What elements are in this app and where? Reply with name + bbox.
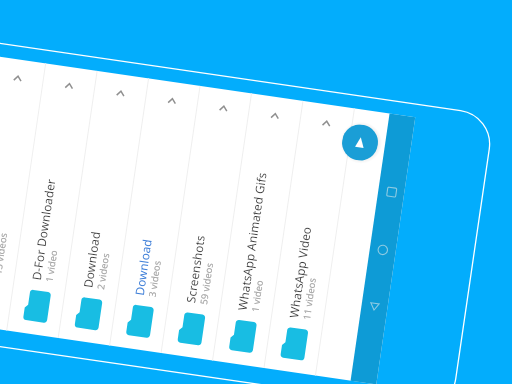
button[interactable]: D-For Downloader	[7, 63, 98, 338]
staticText: D-For Downloader	[28, 177, 59, 281]
staticText: WhatsApp Video	[285, 225, 314, 319]
button[interactable]: WhatsApp Video	[264, 101, 355, 376]
staticText: 2 videos	[94, 252, 112, 290]
staticText: 11 videos	[300, 276, 319, 320]
button[interactable]: Recent apps	[379, 180, 404, 205]
staticText: 3 videos	[146, 260, 164, 298]
staticText: 13 videos	[0, 231, 10, 275]
button[interactable]: Back	[362, 294, 387, 319]
staticText: 1 video	[248, 278, 266, 313]
button[interactable]: Download	[110, 78, 200, 353]
button[interactable]: WhatsApp Animated Gifs	[213, 93, 303, 368]
staticText: 59 videos	[197, 261, 216, 305]
button[interactable]: Screenshots	[162, 86, 252, 361]
staticText: Screenshots	[182, 234, 208, 304]
staticText: Download	[131, 238, 155, 296]
button[interactable]: Download	[59, 71, 149, 346]
staticText: WhatsApp Animated Gifs	[234, 170, 270, 311]
button[interactable]: Play	[340, 122, 380, 163]
button[interactable]: Home	[370, 237, 395, 262]
staticText: Download	[79, 230, 103, 289]
staticText: 1 video	[43, 248, 60, 283]
button[interactable]: Camera	[0, 56, 46, 331]
